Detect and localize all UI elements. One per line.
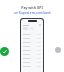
staticText: on RupeeLens.com/bank: [14, 11, 51, 15]
button[interactable]: [21, 40, 43, 44]
button[interactable]: Payment successful: [0, 47, 9, 56]
staticText: Pay with UPI: [21, 5, 43, 10]
button[interactable]: [21, 36, 43, 40]
button[interactable]: [21, 56, 43, 60]
button[interactable]: [21, 32, 43, 36]
button[interactable]: [21, 48, 43, 52]
button[interactable]: [21, 52, 43, 56]
button[interactable]: Contact avatar: [55, 47, 61, 53]
button[interactable]: [21, 44, 43, 48]
button[interactable]: [21, 19, 43, 72]
button[interactable]: [21, 60, 43, 64]
button[interactable]: [21, 64, 43, 68]
